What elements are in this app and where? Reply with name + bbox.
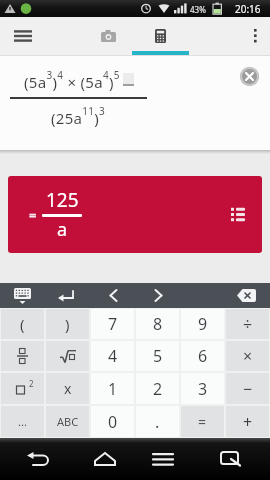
staticText: −: [243, 378, 253, 400]
button[interactable]: ): [46, 309, 89, 339]
staticText: 5: [153, 345, 163, 367]
button[interactable]: 3: [181, 373, 224, 404]
staticText: ...: [18, 414, 27, 429]
button[interactable]: 7: [91, 309, 134, 339]
button[interactable]: [240, 67, 259, 86]
staticText: 9: [198, 313, 208, 335]
staticText: 6: [198, 345, 208, 367]
button[interactable]: [136, 438, 190, 480]
staticText: =: [29, 206, 37, 224]
staticText: 125: [46, 187, 79, 213]
button[interactable]: [12, 438, 64, 480]
button[interactable]: [78, 438, 132, 480]
staticText: 7: [108, 313, 118, 335]
button[interactable]: [240, 17, 270, 55]
button[interactable]: ABC: [46, 406, 89, 437]
button[interactable]: ...: [1, 406, 44, 437]
staticText: (25a11)3: [51, 104, 106, 128]
button[interactable]: +: [226, 406, 269, 437]
staticText: a: [57, 217, 68, 242]
staticText: ): [65, 314, 70, 334]
button[interactable]: [1, 341, 44, 371]
button[interactable]: [228, 283, 264, 308]
button[interactable]: [82, 17, 134, 55]
button[interactable]: 8: [136, 309, 179, 339]
staticText: 1: [108, 378, 118, 400]
button[interactable]: [140, 283, 176, 308]
staticText: x: [64, 379, 72, 398]
button[interactable]: (: [1, 309, 44, 339]
button[interactable]: 9: [181, 309, 224, 339]
staticText: 20:16: [235, 2, 261, 16]
button[interactable]: 0: [91, 406, 134, 437]
staticText: 3: [198, 378, 208, 400]
button[interactable]: x: [46, 373, 89, 404]
button[interactable]: [204, 438, 258, 480]
button[interactable]: [48, 283, 84, 308]
button[interactable]: [4, 283, 40, 308]
button[interactable]: 5: [136, 341, 179, 371]
staticText: 0: [108, 411, 118, 433]
button[interactable]: ÷: [226, 309, 269, 339]
staticText: 4: [108, 345, 118, 367]
staticText: =: [198, 412, 207, 431]
staticText: 2: [153, 378, 163, 400]
button[interactable]: [0, 17, 46, 55]
staticText: ×: [243, 345, 253, 367]
button[interactable]: ×: [226, 341, 269, 371]
staticText: ÷: [243, 313, 253, 335]
button[interactable]: [134, 17, 186, 55]
button[interactable]: [95, 283, 131, 308]
button[interactable]: 2: [136, 373, 179, 404]
staticText: (5a3)4 × (5a4)5: [24, 68, 120, 92]
staticText: 8: [153, 313, 163, 335]
button[interactable]: =: [181, 406, 224, 437]
staticText: (: [20, 314, 25, 334]
button[interactable]: 1: [91, 373, 134, 404]
staticText: .: [155, 411, 160, 433]
button[interactable]: 6: [181, 341, 224, 371]
button[interactable]: [46, 341, 89, 371]
button[interactable]: =: [8, 176, 262, 253]
button[interactable]: 4: [91, 341, 134, 371]
staticText: 2: [29, 378, 34, 389]
staticText: 43%: [190, 4, 206, 15]
button[interactable]: .: [136, 406, 179, 437]
staticText: +: [243, 411, 253, 433]
staticText: ABC: [57, 414, 79, 429]
button[interactable]: −: [226, 373, 269, 404]
button[interactable]: 2: [1, 373, 44, 404]
